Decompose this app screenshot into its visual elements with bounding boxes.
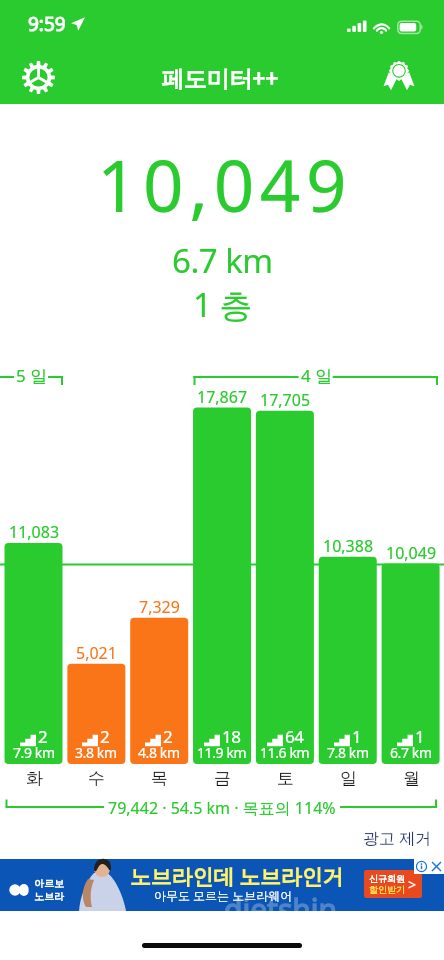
staticText: 79,442 · 54.5 km · 목표의 114% — [108, 797, 336, 819]
staticText: 7.9 km — [13, 743, 55, 762]
staticText: 5 일 — [16, 364, 48, 387]
staticText: 1 — [415, 725, 425, 748]
staticText: 아르보 — [34, 877, 64, 890]
staticText: 일 — [340, 768, 357, 789]
staticText: 6.7 km — [172, 238, 273, 283]
staticText: 2 — [100, 725, 110, 748]
staticText: > — [408, 875, 417, 894]
button[interactable]: Achievements — [374, 53, 423, 102]
staticText: 수 — [88, 768, 105, 789]
staticText: 페도미터++ — [161, 62, 279, 93]
button[interactable]: 광고 제거 — [0, 826, 444, 850]
staticText: 2 — [163, 725, 173, 748]
staticText: 10,388 — [323, 535, 374, 557]
staticText: 1 층 — [193, 282, 252, 327]
staticText: 월 — [403, 768, 420, 789]
staticText: 할인받기 — [369, 884, 405, 895]
staticText: 11.6 km — [260, 743, 310, 762]
staticText: 10,049 — [386, 542, 437, 564]
staticText: 64 — [285, 725, 304, 748]
staticText: 금 — [214, 768, 231, 789]
staticText: 목 — [151, 768, 168, 789]
button[interactable]: 아르보 — [0, 859, 444, 911]
staticText: 신규회원 — [369, 873, 405, 884]
button[interactable]: Settings — [14, 53, 63, 102]
staticText: 3.8 km — [75, 743, 117, 762]
staticText: 아무도 모르는 노브라웨어 — [154, 887, 293, 903]
staticText: 11.9 km — [197, 743, 247, 762]
staticText: 노브라인데 노브라인거 — [130, 862, 344, 891]
staticText: 화 — [26, 768, 43, 789]
staticText: 5,021 — [76, 642, 117, 664]
staticText: 11,083 — [9, 521, 60, 543]
staticText: 광고 제거 — [363, 827, 432, 849]
staticText: 18 — [222, 725, 241, 748]
staticText: 2 — [38, 725, 48, 748]
staticText: dietshin — [224, 889, 338, 930]
staticText: 토 — [277, 768, 294, 789]
staticText: 7.8 km — [327, 743, 369, 762]
staticText: 4 일 — [301, 364, 333, 387]
staticText: 9:59 — [28, 11, 66, 37]
staticText: 6.7 km — [390, 743, 432, 762]
staticText: 17,705 — [260, 389, 311, 411]
staticText: 1 — [352, 725, 362, 748]
staticText: 노브라 — [34, 890, 64, 903]
staticText: 7,329 — [139, 596, 180, 618]
staticText: 10,049 — [97, 136, 353, 233]
staticText: 4.8 km — [138, 743, 180, 762]
staticText: 17,867 — [197, 386, 248, 408]
